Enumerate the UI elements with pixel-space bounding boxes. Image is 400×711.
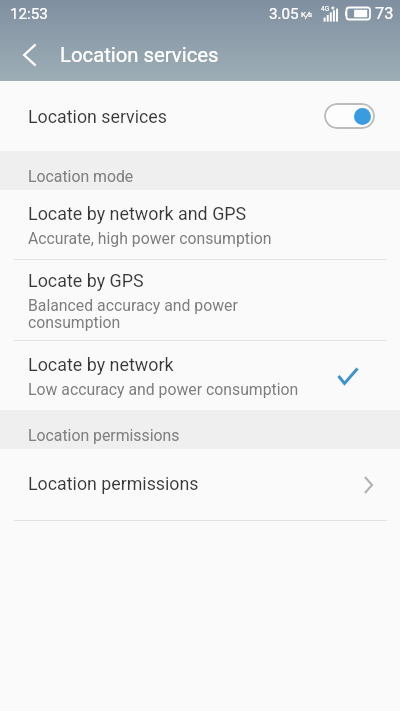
staticText: Locate by GPS bbox=[28, 270, 144, 291]
staticText: K bbox=[301, 10, 307, 19]
staticText: Location services bbox=[28, 106, 324, 127]
staticText: Locate by network bbox=[28, 354, 174, 375]
staticText: 73 bbox=[375, 4, 394, 23]
button[interactable]: Location services toggle bbox=[324, 103, 375, 129]
button[interactable]: Back bbox=[9, 35, 49, 75]
other: Open location permissions bbox=[357, 474, 379, 496]
staticText: Accurate, high power consumption bbox=[28, 229, 272, 248]
staticText: Location permissions bbox=[28, 473, 199, 494]
button[interactable]: Locate by GPS bbox=[0, 260, 400, 340]
staticText: Balanced accuracy and power consumption bbox=[28, 296, 238, 332]
staticText: 3.05 bbox=[269, 5, 299, 23]
staticText: Location services bbox=[60, 43, 219, 67]
button[interactable]: Location permissions bbox=[0, 449, 400, 520]
staticText: Low accuracy and power consumption bbox=[28, 380, 299, 399]
staticText: Location mode bbox=[28, 167, 134, 186]
button[interactable]: Locate by network bbox=[0, 341, 400, 410]
staticText: 4G bbox=[321, 5, 330, 13]
staticText: 12:53 bbox=[10, 5, 48, 23]
button[interactable]: Locate by network and GPS bbox=[0, 190, 400, 259]
staticText: Location permissions bbox=[28, 426, 180, 445]
button[interactable]: Location services bbox=[0, 81, 400, 151]
staticText: s bbox=[308, 10, 313, 19]
staticText: Locate by network and GPS bbox=[28, 203, 247, 224]
